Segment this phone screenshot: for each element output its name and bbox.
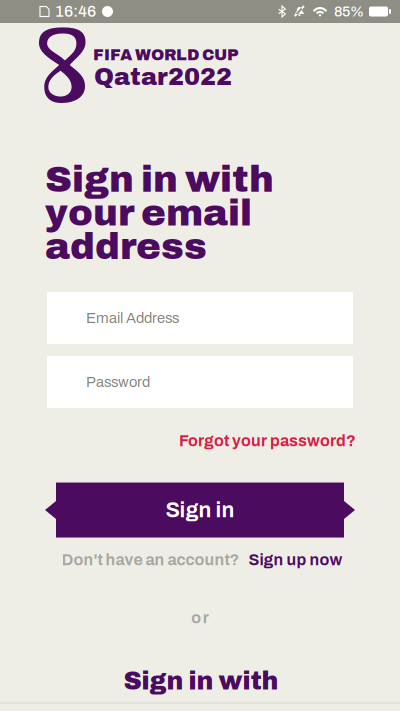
staticText: Forgot your password?	[179, 432, 356, 450]
staticText: FIFA WORLD CUP	[93, 46, 239, 64]
staticText: or	[191, 609, 209, 627]
button[interactable]: Sign up now	[248, 551, 342, 569]
staticText: 85%	[334, 3, 364, 19]
button[interactable]: Forgot your password?	[179, 432, 356, 450]
staticText: Password	[86, 374, 150, 390]
button[interactable]: Email Address	[47, 292, 353, 344]
staticText: Email Address	[86, 310, 179, 326]
button[interactable]: Password	[47, 356, 353, 408]
staticText: Sign in	[165, 498, 234, 522]
staticText: Don't have an account?	[61, 551, 239, 569]
staticText: Sign in with your email address	[45, 159, 274, 267]
staticText: Sign in with	[123, 667, 278, 695]
staticText: 16:46	[55, 3, 96, 20]
button[interactable]: Sign in	[45, 482, 355, 537]
staticText: Qatar2022	[94, 64, 232, 90]
staticText: Sign up now	[248, 551, 342, 569]
